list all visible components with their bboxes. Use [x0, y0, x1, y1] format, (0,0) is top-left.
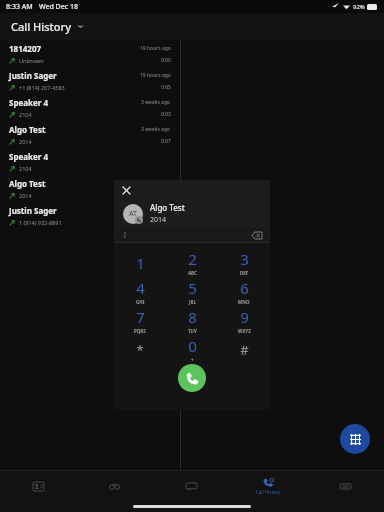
staticText: JKL: [189, 299, 196, 305]
button[interactable]: Messages: [153, 471, 230, 501]
staticText: Call History: [11, 19, 72, 34]
button[interactable]: More options: [121, 231, 129, 239]
staticText: 0:05: [161, 84, 171, 91]
staticText: 9: [240, 307, 249, 327]
staticText: 1: [136, 253, 145, 273]
staticText: Justin Sager: [9, 205, 57, 216]
button[interactable]: Justin Sager: [0, 67, 180, 94]
staticText: Algo Test: [150, 202, 185, 213]
staticText: Justin Sager: [9, 70, 57, 81]
staticText: *: [136, 341, 144, 359]
button[interactable]: 0: [166, 335, 218, 364]
button[interactable]: Speaker 4: [0, 148, 180, 175]
button[interactable]: Backspace: [251, 231, 263, 240]
button[interactable]: 1: [114, 248, 166, 277]
staticText: 0:03: [161, 111, 171, 118]
staticText: Algo Test: [9, 178, 46, 189]
staticText: Speaker 4: [9, 151, 48, 162]
button[interactable]: Close: [119, 183, 133, 197]
button[interactable]: *: [114, 335, 166, 364]
button[interactable]: 4: [114, 277, 166, 306]
staticText: 7: [136, 307, 145, 327]
button[interactable]: #: [218, 335, 270, 364]
button[interactable]: 7: [114, 306, 166, 335]
button[interactable]: Call History: [230, 471, 307, 501]
staticText: 0: [188, 336, 197, 356]
staticText: 0:07: [161, 138, 171, 145]
staticText: TUV: [188, 328, 197, 334]
staticText: #: [240, 341, 249, 359]
staticText: Unknown: [19, 57, 44, 64]
staticText: 92%: [353, 3, 365, 11]
button[interactable]: 9: [218, 306, 270, 335]
button[interactable]: 8: [166, 306, 218, 335]
button[interactable]: Justin Sager: [0, 202, 180, 229]
staticText: Algo Test: [9, 124, 46, 135]
staticText: +: [191, 357, 194, 363]
button[interactable]: 1814207: [0, 40, 180, 67]
staticText: 2: [188, 249, 197, 269]
staticText: AT: [129, 209, 138, 219]
staticText: +1 (814) 207-4583: [19, 84, 65, 91]
staticText: 3: [240, 249, 249, 269]
button[interactable]: 6: [218, 277, 270, 306]
staticText: ABC: [188, 270, 197, 276]
button[interactable]: Contacts: [0, 471, 76, 501]
staticText: WXYZ: [238, 328, 251, 334]
staticText: GHI: [136, 299, 145, 305]
staticText: 6: [240, 278, 249, 298]
button[interactable]: Speaker 4: [0, 94, 180, 121]
staticText: Call History: [256, 489, 281, 495]
staticText: 5: [188, 278, 197, 298]
button[interactable]: Voicemail: [76, 471, 153, 501]
button[interactable]: 5: [166, 277, 218, 306]
staticText: 2014: [19, 138, 32, 145]
staticText: 1814207: [9, 43, 42, 54]
button[interactable]: Keypad: [307, 471, 384, 501]
button[interactable]: Call History: [11, 13, 384, 40]
staticText: 3 weeks ago: [141, 126, 171, 133]
staticText: 2014: [19, 192, 32, 199]
button[interactable]: Algo Test: [0, 121, 180, 148]
button[interactable]: Call: [178, 364, 206, 392]
staticText: Wed Dec 18: [39, 2, 79, 12]
staticText: 1 (814) 932-8891: [19, 219, 62, 226]
staticText: 19 hours ago: [140, 72, 171, 79]
staticText: DEF: [240, 270, 249, 276]
staticText: 3 weeks ago: [141, 99, 171, 106]
staticText: 19 hours ago: [140, 45, 171, 52]
staticText: 2014: [150, 215, 167, 225]
staticText: 8:33 AM: [6, 2, 33, 12]
staticText: 2104: [19, 165, 32, 172]
staticText: PQRS: [134, 328, 146, 334]
button[interactable]: 3: [218, 248, 270, 277]
staticText: 4: [136, 278, 145, 298]
staticText: 0:00: [161, 57, 171, 64]
button[interactable]: Open dialpad: [340, 424, 370, 454]
staticText: 2104: [19, 111, 32, 118]
button[interactable]: Algo Test: [0, 175, 180, 202]
staticText: Speaker 4: [9, 97, 48, 108]
staticText: MNO: [238, 299, 250, 305]
button[interactable]: 2: [166, 248, 218, 277]
staticText: 8: [188, 307, 197, 327]
